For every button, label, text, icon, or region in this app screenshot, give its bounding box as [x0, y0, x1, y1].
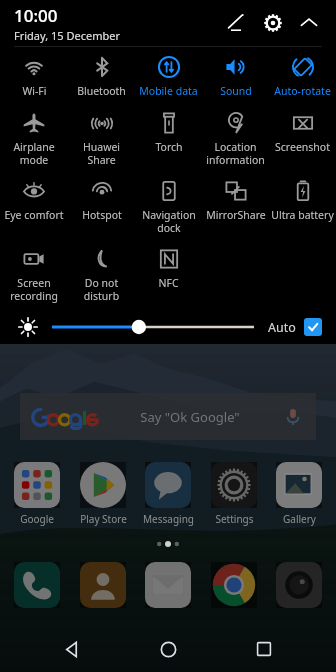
button[interactable]: Auto-rotate: [269, 49, 336, 105]
button[interactable]: Huawei Share: [68, 105, 135, 173]
button[interactable]: Hotspot: [68, 173, 135, 241]
button[interactable]: Messaging: [139, 462, 197, 526]
button[interactable]: Play Store: [74, 462, 132, 526]
button[interactable]: Contacts: [74, 562, 132, 608]
staticText: Friday, 15 December: [14, 28, 120, 43]
button[interactable]: Eye comfort: [0, 173, 68, 241]
button[interactable]: Chrome: [205, 562, 263, 608]
staticText: Huawei Share: [68, 140, 135, 167]
button[interactable]: MirrorShare: [202, 173, 269, 241]
button[interactable]: Say "Ok Google": [20, 393, 316, 440]
button[interactable]: Ultra battery: [269, 173, 336, 241]
button[interactable]: Brightness: [52, 315, 254, 339]
staticText: Google: [20, 512, 54, 526]
staticText: 10:00: [14, 4, 58, 27]
button[interactable]: Camera: [270, 562, 328, 608]
button[interactable]: Screen recording: [0, 241, 68, 309]
staticText: Settings: [215, 512, 254, 526]
button[interactable]: Edit: [218, 6, 252, 40]
button[interactable]: Sound: [202, 49, 269, 105]
staticText: NFC: [158, 276, 179, 290]
button[interactable]: Back: [48, 626, 96, 672]
staticText: MirrorShare: [206, 208, 266, 222]
staticText: Sound: [220, 84, 252, 98]
staticText: Hotspot: [82, 208, 122, 222]
staticText: Say "Ok Google": [140, 408, 240, 426]
staticText: Do not disturb: [68, 276, 135, 303]
staticText: Wi-Fi: [22, 84, 47, 98]
button[interactable]: Collapse: [292, 6, 326, 40]
button[interactable]: Location information: [202, 105, 269, 173]
button[interactable]: Email: [139, 562, 197, 608]
staticText: Messaging: [143, 512, 194, 526]
staticText: Airplane mode: [0, 140, 68, 167]
staticText: Navigation dock: [142, 208, 196, 235]
button[interactable]: Recents: [240, 626, 288, 672]
button[interactable]: Gallery: [270, 462, 328, 526]
button[interactable]: Auto: [268, 318, 322, 336]
button[interactable]: Bluetooth: [68, 49, 135, 105]
button[interactable]: Settings: [205, 462, 263, 526]
staticText: Torch: [155, 140, 183, 154]
button[interactable]: Wi-Fi: [0, 49, 68, 105]
staticText: Screen recording: [10, 276, 58, 303]
button[interactable]: Home: [144, 626, 192, 672]
button[interactable]: Airplane mode: [0, 105, 68, 173]
button[interactable]: Mobile data: [135, 49, 202, 105]
staticText: Gallery: [283, 512, 316, 526]
staticText: Eye comfort: [4, 208, 64, 222]
staticText: Location information: [206, 140, 265, 167]
button[interactable]: Do not disturb: [68, 241, 135, 309]
button[interactable]: Torch: [135, 105, 202, 173]
staticText: Screenshot: [275, 140, 330, 154]
staticText: Auto-rotate: [274, 84, 331, 98]
staticText: Bluetooth: [77, 84, 126, 98]
staticText: Play Store: [80, 512, 127, 526]
staticText: Mobile data: [139, 84, 198, 98]
button[interactable]: Phone: [8, 562, 66, 608]
staticText: Auto: [268, 319, 296, 336]
button[interactable]: NFC: [135, 241, 202, 309]
button[interactable]: Screenshot: [269, 105, 336, 173]
staticText: Ultra battery: [271, 208, 334, 222]
button[interactable]: Settings: [256, 6, 290, 40]
button[interactable]: Navigation dock: [135, 173, 202, 241]
button[interactable]: Google: [8, 462, 66, 526]
